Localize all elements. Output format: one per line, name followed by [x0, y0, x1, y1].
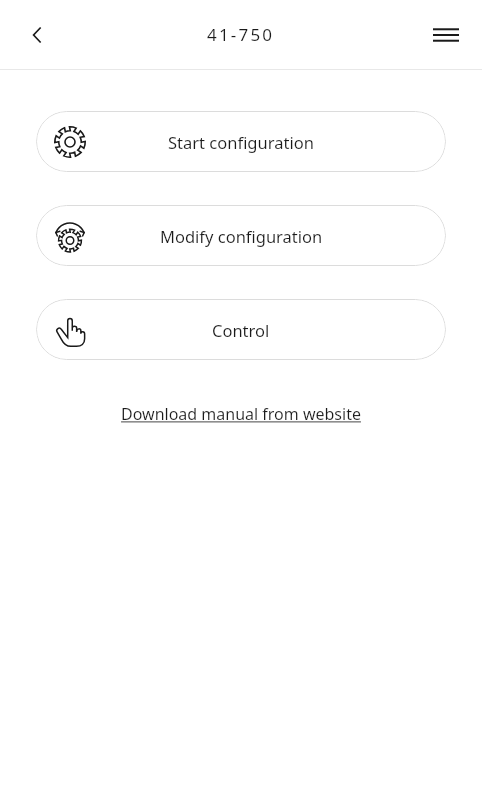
staticText: Download manual from website	[121, 403, 361, 425]
button[interactable]: Modify configuration	[36, 205, 446, 266]
staticText: 41-750	[207, 23, 275, 46]
staticText: Control	[212, 319, 270, 341]
staticText: Start configuration	[168, 131, 314, 153]
button[interactable]: Back	[16, 13, 60, 57]
button[interactable]: Menu	[424, 13, 468, 57]
button[interactable]: Download manual from website	[113, 397, 369, 431]
button[interactable]: Control	[36, 299, 446, 360]
button[interactable]: Start configuration	[36, 111, 446, 172]
staticText: Modify configuration	[160, 225, 323, 247]
